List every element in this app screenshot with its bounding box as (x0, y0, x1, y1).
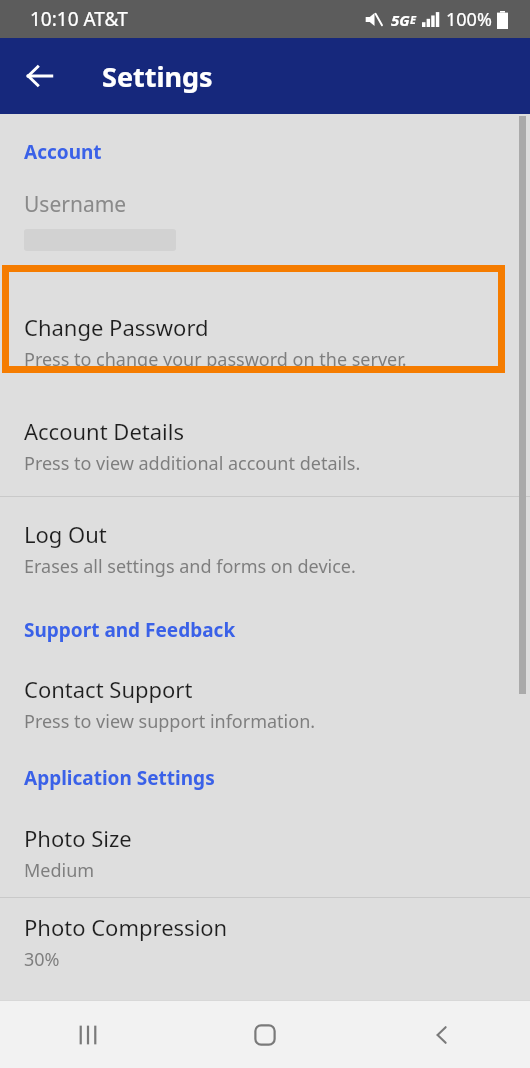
staticText: E (410, 12, 416, 27)
staticText: Press to change your password on the ser… (24, 347, 407, 372)
button[interactable]: Account Details (0, 396, 530, 496)
staticText: 30% (24, 947, 60, 972)
staticText: Press to view additional account details… (24, 451, 361, 476)
staticText: Press to view support information. (24, 709, 316, 734)
button[interactable]: Change Password (0, 288, 530, 396)
staticText: 100% (446, 7, 492, 32)
button[interactable]: Log Out (0, 497, 530, 601)
staticText: Account (24, 139, 102, 165)
staticText: Photo Compression (24, 912, 228, 942)
button[interactable]: Home (176, 1001, 353, 1068)
staticText: Log Out (24, 519, 107, 549)
button[interactable]: Photo Compression (0, 898, 530, 986)
staticText: Photo Size (24, 823, 132, 853)
button[interactable]: Photo Size (0, 809, 530, 897)
staticText: Medium (24, 858, 95, 883)
staticText: Settings (102, 58, 213, 95)
staticText: Application Settings (24, 765, 215, 791)
staticText: Change Password (24, 312, 209, 342)
staticText: 10:10 AT&T (30, 6, 128, 32)
staticText: 5G (391, 10, 410, 30)
button[interactable]: Contact Support (0, 661, 530, 747)
staticText: Username (24, 190, 127, 219)
staticText: Support and Feedback (24, 617, 236, 643)
button[interactable]: Username (0, 190, 530, 251)
button[interactable]: Recent apps (0, 1001, 176, 1068)
button[interactable]: Back (12, 48, 68, 104)
staticText: Contact Support (24, 674, 193, 704)
button[interactable]: Back (353, 1001, 530, 1068)
staticText: Erases all settings and forms on device. (24, 554, 356, 579)
staticText: Account Details (24, 416, 184, 446)
